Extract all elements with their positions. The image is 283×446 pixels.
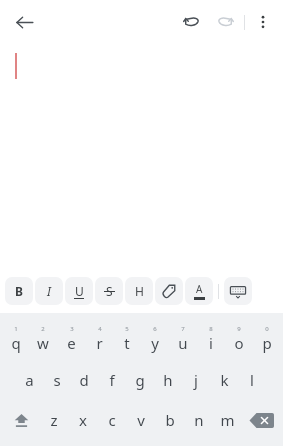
staticText: j bbox=[194, 370, 198, 390]
staticText: 1 bbox=[14, 325, 18, 333]
staticText: H bbox=[135, 283, 144, 299]
button[interactable]: m bbox=[213, 400, 242, 440]
button[interactable]: a bbox=[16, 360, 43, 400]
button[interactable]: f bbox=[98, 360, 126, 400]
button[interactable]: Back bbox=[6, 4, 42, 40]
button[interactable]: Hide keyboard bbox=[224, 277, 252, 305]
staticText: b bbox=[165, 410, 175, 430]
staticText: f bbox=[109, 370, 115, 390]
staticText: S bbox=[106, 283, 113, 299]
button[interactable]: z bbox=[40, 400, 68, 440]
button[interactable]: Shift bbox=[2, 400, 40, 440]
button[interactable]: n bbox=[184, 400, 213, 440]
staticText: B bbox=[15, 283, 23, 299]
button[interactable]: More options bbox=[248, 7, 278, 37]
staticText: a bbox=[25, 370, 34, 390]
staticText: g bbox=[135, 370, 145, 390]
staticText: d bbox=[79, 370, 89, 390]
staticText: u bbox=[178, 333, 188, 353]
staticText: 6 bbox=[153, 325, 157, 333]
staticText: 7 bbox=[181, 325, 185, 333]
button[interactable]: h bbox=[154, 360, 182, 400]
staticText: q bbox=[11, 333, 21, 353]
button[interactable]: Underline bbox=[65, 277, 93, 305]
staticText: y bbox=[151, 333, 159, 353]
button[interactable]: j bbox=[182, 360, 210, 400]
staticText: 4 bbox=[98, 325, 102, 333]
staticText: p bbox=[262, 333, 272, 353]
button[interactable]: Highlight bbox=[155, 277, 183, 305]
staticText: n bbox=[194, 410, 204, 430]
button[interactable]: Italic bbox=[35, 277, 63, 305]
button[interactable]: l bbox=[238, 360, 266, 400]
button[interactable]: d bbox=[70, 360, 98, 400]
staticText: e bbox=[67, 333, 76, 353]
button[interactable]: 6 bbox=[141, 318, 169, 360]
staticText: r bbox=[96, 333, 103, 353]
staticText: x bbox=[79, 410, 87, 430]
staticText: I bbox=[47, 283, 51, 299]
staticText: k bbox=[220, 370, 229, 390]
staticText: i bbox=[209, 333, 213, 353]
button[interactable]: 4 bbox=[85, 318, 113, 360]
button[interactable]: v bbox=[126, 400, 155, 440]
staticText: s bbox=[53, 370, 61, 390]
button[interactable]: 3 bbox=[57, 318, 85, 360]
button[interactable]: 5 bbox=[113, 318, 141, 360]
button[interactable] bbox=[0, 44, 283, 277]
staticText: 8 bbox=[209, 325, 213, 333]
staticText: l bbox=[250, 370, 254, 390]
button[interactable]: 0 bbox=[253, 318, 281, 360]
button[interactable]: 7 bbox=[169, 318, 197, 360]
staticText: A bbox=[196, 282, 203, 296]
button[interactable]: g bbox=[126, 360, 154, 400]
button[interactable]: Heading bbox=[125, 277, 153, 305]
button[interactable]: Bold bbox=[5, 277, 33, 305]
button[interactable]: 2 bbox=[29, 318, 57, 360]
button[interactable]: Redo bbox=[210, 7, 240, 37]
staticText: 5 bbox=[125, 325, 129, 333]
button[interactable]: k bbox=[210, 360, 238, 400]
button[interactable]: 8 bbox=[197, 318, 225, 360]
staticText: 9 bbox=[237, 325, 241, 333]
button[interactable]: x bbox=[68, 400, 97, 440]
button[interactable]: Text color bbox=[185, 277, 213, 305]
staticText: t bbox=[124, 333, 130, 353]
button[interactable]: Strikethrough bbox=[95, 277, 123, 305]
button[interactable]: Undo bbox=[176, 7, 206, 37]
staticText: 2 bbox=[41, 325, 45, 333]
button[interactable]: 1 bbox=[2, 318, 29, 360]
staticText: 3 bbox=[70, 325, 74, 333]
button[interactable]: c bbox=[97, 400, 126, 440]
staticText: z bbox=[50, 410, 58, 430]
staticText: U bbox=[75, 283, 84, 299]
button[interactable]: s bbox=[43, 360, 70, 400]
staticText: v bbox=[137, 410, 145, 430]
staticText: m bbox=[220, 410, 235, 430]
staticText: o bbox=[234, 333, 244, 353]
staticText: w bbox=[37, 333, 49, 353]
staticText: h bbox=[163, 370, 173, 390]
staticText: c bbox=[108, 410, 116, 430]
staticText: 0 bbox=[265, 325, 269, 333]
button[interactable]: Backspace bbox=[242, 400, 281, 440]
button[interactable]: 9 bbox=[225, 318, 253, 360]
button[interactable]: b bbox=[155, 400, 184, 440]
